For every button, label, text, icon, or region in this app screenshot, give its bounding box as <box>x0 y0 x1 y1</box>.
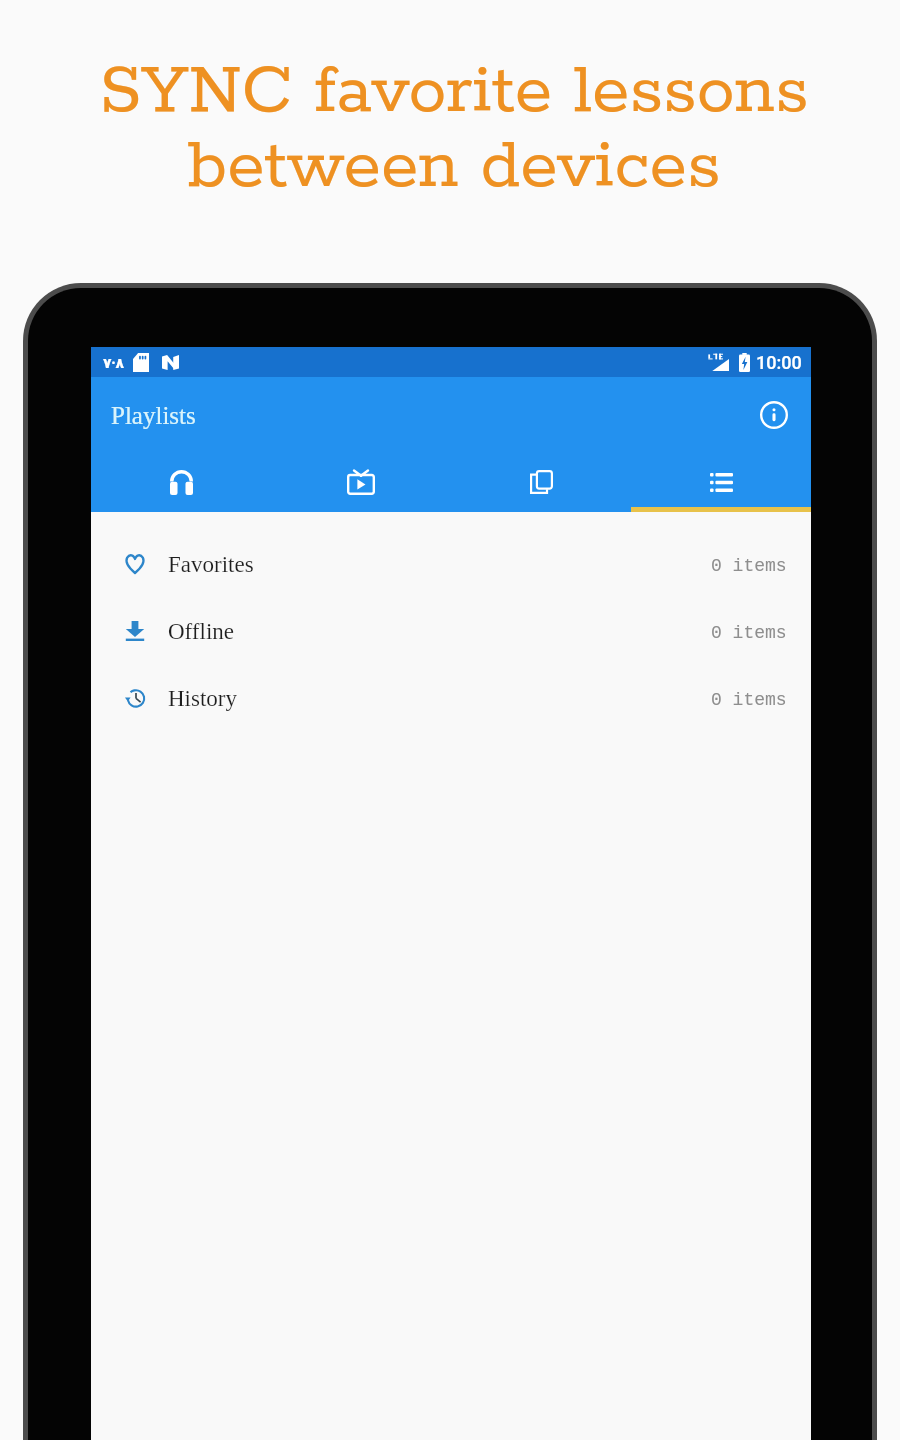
button[interactable]: Video <box>271 452 451 512</box>
staticText: History <box>168 686 237 711</box>
button[interactable]: Playlists <box>631 452 811 512</box>
staticText: 0 items <box>711 623 787 643</box>
staticText: 0 items <box>711 690 787 710</box>
button[interactable]: History <box>91 664 811 731</box>
staticText: SYNC favorite lessons between devices <box>4 49 900 210</box>
staticText: Playlists <box>111 402 196 430</box>
staticText: 10:00 <box>756 352 802 373</box>
button[interactable]: Audio <box>91 452 271 512</box>
staticText: Favorites <box>168 552 254 577</box>
staticText: Offline <box>168 619 235 644</box>
button[interactable]: Collections <box>451 452 631 512</box>
button[interactable]: Info <box>750 391 798 439</box>
staticText: 0 items <box>711 556 787 576</box>
staticText: ۷·۸ <box>103 353 125 372</box>
button[interactable]: Offline <box>91 597 811 664</box>
button[interactable]: Favorites <box>91 530 811 597</box>
